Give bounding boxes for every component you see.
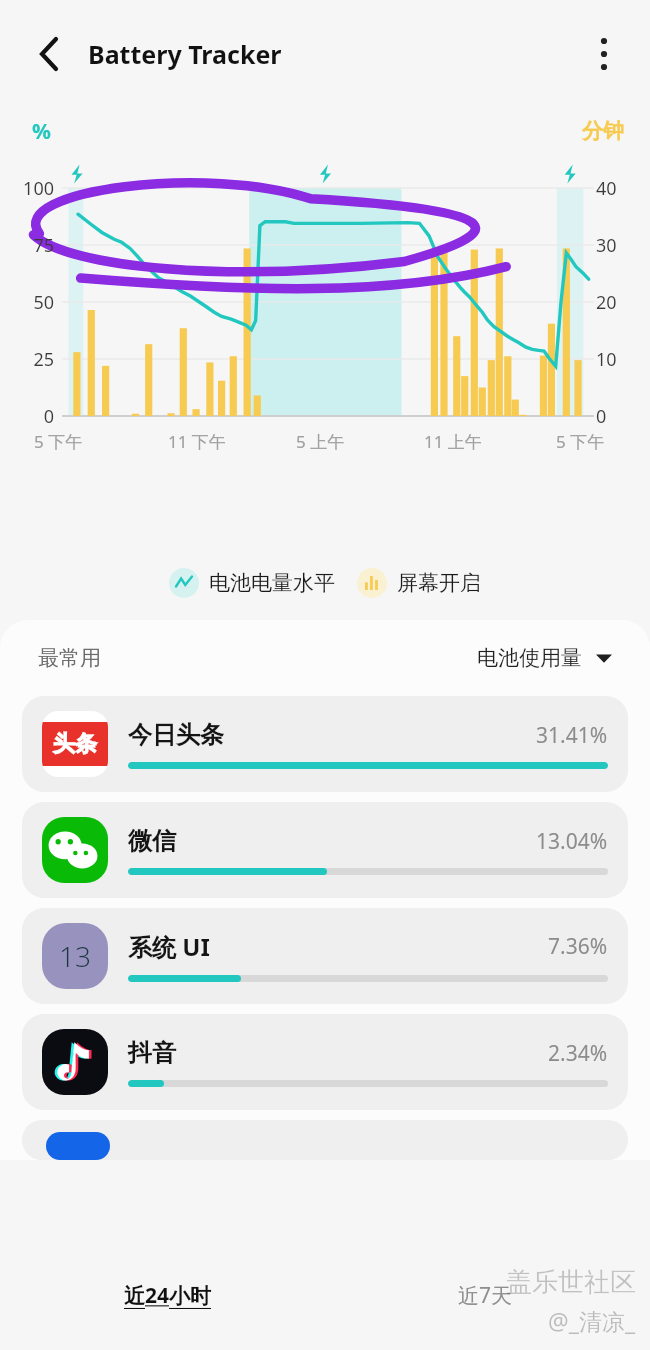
staticText: 50	[0, 290, 54, 315]
staticText: 5 下午	[34, 430, 83, 453]
button[interactable]: 微信	[22, 802, 628, 898]
staticText: @_清凉_	[548, 1305, 636, 1336]
staticText: 头条	[53, 730, 97, 758]
button[interactable]: More options	[580, 30, 628, 78]
staticText: 电池使用量	[477, 645, 582, 671]
staticText: 13.04%	[536, 827, 608, 856]
staticText: 13	[59, 937, 91, 975]
staticText: 分钟	[582, 118, 624, 144]
button[interactable]: 抖音	[22, 1014, 628, 1110]
staticText: 5 上午	[296, 430, 345, 453]
staticText: 100	[0, 176, 54, 201]
button[interactable]: 头条	[22, 696, 628, 792]
staticText: 电池电量水平	[209, 570, 335, 596]
staticText: 屏幕开启	[397, 570, 481, 596]
staticText: 25	[0, 347, 54, 372]
staticText: 11 上午	[424, 430, 482, 453]
staticText: 0	[596, 404, 642, 429]
staticText: 0	[0, 404, 54, 429]
staticText: 最常用	[38, 645, 101, 671]
staticText: 11 下午	[168, 430, 226, 453]
button[interactable]: 近24小时	[124, 1281, 212, 1310]
staticText: 7.36%	[548, 932, 608, 961]
button[interactable]: 13	[22, 908, 628, 1004]
staticText: 20	[596, 290, 642, 315]
button[interactable]	[22, 1120, 628, 1160]
staticText: 75	[0, 233, 54, 258]
staticText: 2.34%	[548, 1039, 608, 1068]
staticText: 盖乐世社区	[506, 1266, 636, 1299]
staticText: 31.41%	[536, 721, 608, 750]
staticText: 5 下午	[556, 430, 605, 453]
staticText: 10	[596, 347, 642, 372]
staticText: %	[32, 117, 51, 146]
staticText: 系统 UI	[128, 930, 210, 963]
button[interactable]: 电池使用量	[477, 645, 612, 671]
staticText: 微信	[128, 826, 176, 856]
staticText: 抖音	[128, 1038, 176, 1068]
button[interactable]: Back	[26, 31, 72, 77]
button[interactable]: 近7天	[458, 1281, 513, 1310]
staticText: 今日头条	[128, 720, 224, 750]
staticText: Battery Tracker	[88, 37, 282, 71]
staticText: 近24小时	[124, 1281, 212, 1310]
staticText: 40	[596, 176, 642, 201]
staticText: 30	[596, 233, 642, 258]
